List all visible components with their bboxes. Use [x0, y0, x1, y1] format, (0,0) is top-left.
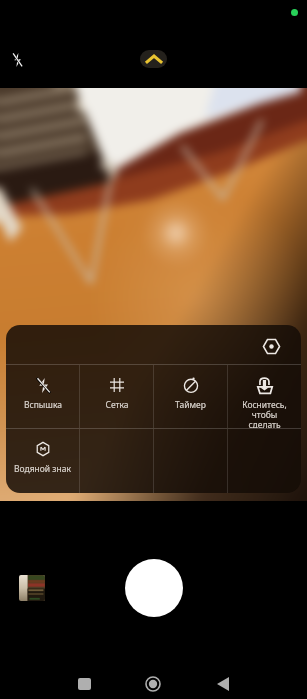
- button[interactable]: Expand options: [140, 50, 167, 68]
- button[interactable]: [80, 429, 153, 493]
- staticText: Коснитесь, чтобы сделать: [242, 399, 287, 428]
- button[interactable]: Recents: [64, 664, 104, 699]
- button[interactable]: Settings: [257, 332, 285, 360]
- button[interactable]: Gallery: [19, 575, 45, 601]
- button[interactable]: Flash off: [3, 46, 31, 74]
- button[interactable]: Shutter: [125, 559, 183, 617]
- button[interactable]: Back: [203, 664, 243, 699]
- button[interactable]: Сетка: [80, 365, 153, 428]
- button[interactable]: Вспышка: [6, 365, 79, 428]
- button[interactable]: Таймер: [154, 365, 227, 428]
- staticText: Сетка: [105, 399, 129, 411]
- button[interactable]: Коснитесь, чтобы сделать: [228, 365, 301, 428]
- staticText: Водяной знак: [14, 463, 71, 475]
- staticText: Таймер: [175, 399, 206, 411]
- button[interactable]: [154, 429, 227, 493]
- button[interactable]: Водяной знак: [6, 429, 79, 493]
- button[interactable]: Home: [133, 664, 173, 699]
- staticText: Вспышка: [24, 399, 62, 411]
